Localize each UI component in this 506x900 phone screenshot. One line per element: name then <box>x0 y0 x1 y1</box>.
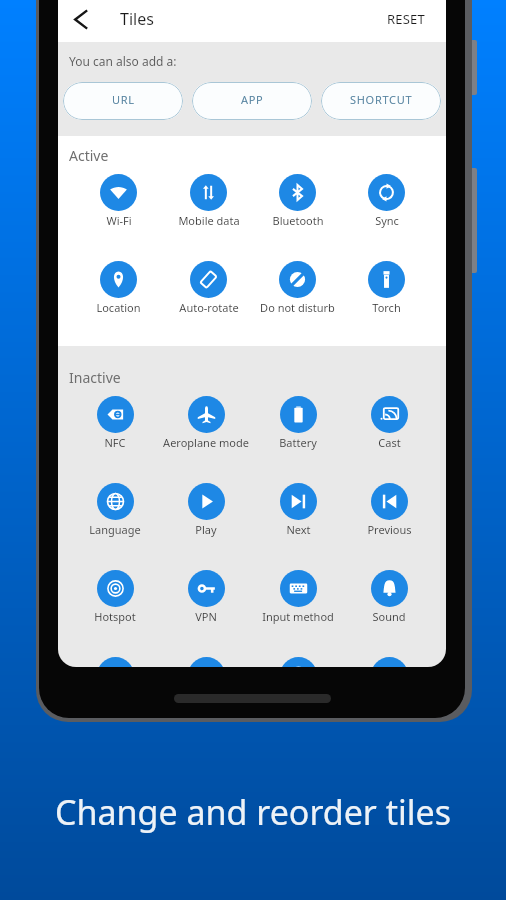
button[interactable]: Torch <box>342 261 431 315</box>
staticText: Torch <box>372 300 401 315</box>
button[interactable]: Previous <box>343 483 435 537</box>
button[interactable]: Location <box>74 261 163 315</box>
button[interactable]: Hotspot <box>69 570 161 624</box>
staticText: Inactive <box>69 368 121 387</box>
button[interactable]: Wi-Fi <box>74 174 163 228</box>
button[interactable]: Sound <box>343 570 435 624</box>
button[interactable]: Battery <box>252 396 344 450</box>
button[interactable]: Record <box>160 657 252 667</box>
button[interactable]: RESET <box>375 2 446 36</box>
staticText: Auto-rotate <box>179 300 239 315</box>
staticText: VPN <box>195 609 217 624</box>
staticText: Language <box>89 522 141 537</box>
button[interactable]: Screenshot <box>69 657 161 667</box>
staticText: Input method <box>262 609 334 624</box>
button[interactable]: Next <box>252 483 344 537</box>
button[interactable]: VPN <box>160 570 252 624</box>
button[interactable]: Back <box>58 0 102 40</box>
staticText: Do not disturb <box>260 300 335 315</box>
button[interactable]: NFC <box>69 396 161 450</box>
staticText: Hotspot <box>94 609 136 624</box>
staticText: Change and reorder tiles <box>0 789 506 835</box>
button[interactable]: SHORTCUT <box>321 82 441 120</box>
staticText: Active <box>69 146 109 165</box>
staticText: Cast <box>378 435 401 450</box>
staticText: Battery <box>279 435 317 450</box>
button[interactable]: Mobile data <box>164 174 253 228</box>
button[interactable]: URL <box>63 82 183 120</box>
button[interactable]: Language <box>69 483 161 537</box>
staticText: Previous <box>367 522 412 537</box>
staticText: Next <box>286 522 311 537</box>
staticText: Tiles <box>120 8 154 30</box>
staticText: Bluetooth <box>272 213 324 228</box>
button[interactable]: APP <box>192 82 312 120</box>
staticText: SHORTCUT <box>350 92 413 107</box>
button[interactable]: Auto-rotate <box>164 261 253 315</box>
staticText: Sound <box>372 609 406 624</box>
button[interactable]: Aeroplane mode <box>160 396 252 450</box>
button[interactable]: Cast <box>343 396 435 450</box>
staticText: You can also add a: <box>69 53 177 69</box>
button[interactable]: Bluetooth <box>253 174 342 228</box>
staticText: Sync <box>375 213 399 228</box>
button[interactable]: Sync <box>342 174 431 228</box>
button[interactable]: Info <box>252 657 344 667</box>
staticText: Mobile data <box>178 213 240 228</box>
staticText: NFC <box>104 435 126 450</box>
staticText: Location <box>96 300 141 315</box>
button[interactable]: Play <box>160 483 252 537</box>
staticText: Play <box>195 522 217 537</box>
staticText: APP <box>241 92 264 107</box>
button[interactable]: Input method <box>252 570 344 624</box>
staticText: RESET <box>387 10 425 28</box>
button[interactable]: Help <box>343 657 435 667</box>
staticText: Wi-Fi <box>106 213 132 228</box>
staticText: Aeroplane mode <box>163 435 249 450</box>
staticText: URL <box>112 92 135 107</box>
button[interactable]: Do not disturb <box>253 261 342 315</box>
